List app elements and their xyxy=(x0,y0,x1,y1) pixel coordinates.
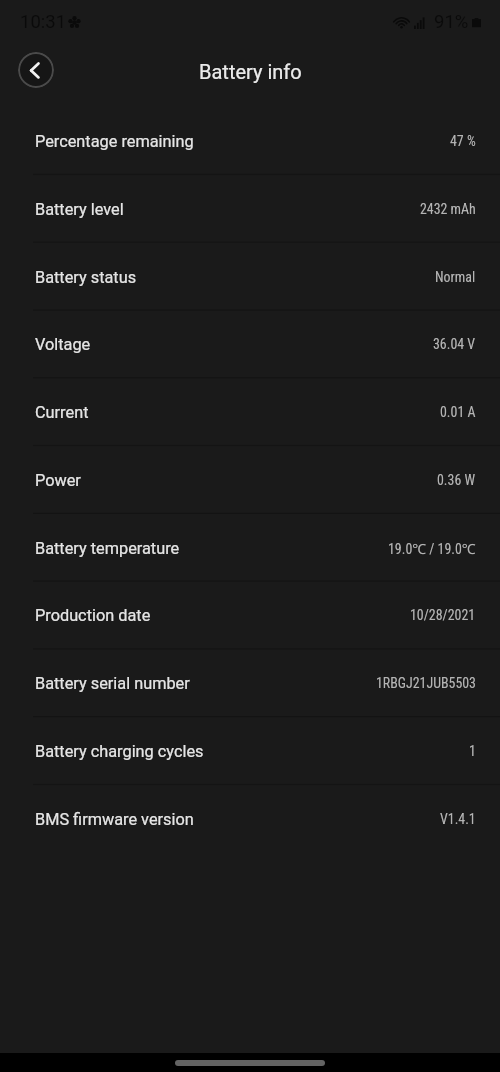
staticText: Production date xyxy=(35,606,151,625)
staticText: Battery status xyxy=(35,268,137,287)
button[interactable]: Battery charging cycles xyxy=(0,717,500,785)
button[interactable]: Battery serial number xyxy=(0,649,500,717)
button[interactable]: Back xyxy=(18,52,54,88)
button[interactable]: BMS firmware version xyxy=(0,785,500,853)
button[interactable]: Power xyxy=(0,446,500,514)
button[interactable]: Production date xyxy=(0,581,500,649)
staticText: 91% xyxy=(434,11,469,33)
staticText: 2432 mAh xyxy=(420,201,476,217)
staticText: 10/28/2021 xyxy=(410,607,476,623)
staticText: Battery serial number xyxy=(35,674,190,693)
staticText: Battery temperature xyxy=(35,539,180,558)
staticText: Voltage xyxy=(35,335,91,354)
staticText: 1RBGJ21JUB5503 xyxy=(376,675,476,691)
staticText: 10:31 xyxy=(20,11,67,33)
staticText: Power xyxy=(35,471,81,490)
staticText: 0.01 A xyxy=(440,404,476,420)
staticText: 47 % xyxy=(450,133,476,149)
button[interactable]: Battery temperature xyxy=(0,514,500,582)
staticText: 36.04 V xyxy=(433,336,476,352)
button[interactable]: Battery status xyxy=(0,243,500,311)
staticText: Battery info xyxy=(199,60,302,83)
staticText: 19.0℃ / 19.0℃ xyxy=(388,539,476,558)
button[interactable]: Percentage remaining xyxy=(0,107,500,175)
button[interactable]: Voltage xyxy=(0,310,500,378)
staticText: Battery charging cycles xyxy=(35,742,204,761)
staticText: Battery level xyxy=(35,200,124,219)
staticText: V1.4.1 xyxy=(440,811,476,827)
button[interactable]: Current xyxy=(0,378,500,446)
staticText: 0.36 W xyxy=(437,472,476,488)
staticText: Normal xyxy=(435,269,476,285)
button[interactable]: Battery level xyxy=(0,175,500,243)
staticText: 1 xyxy=(469,743,476,759)
staticText: Current xyxy=(35,403,89,422)
staticText: Percentage remaining xyxy=(35,132,194,151)
staticText: BMS firmware version xyxy=(35,810,194,829)
